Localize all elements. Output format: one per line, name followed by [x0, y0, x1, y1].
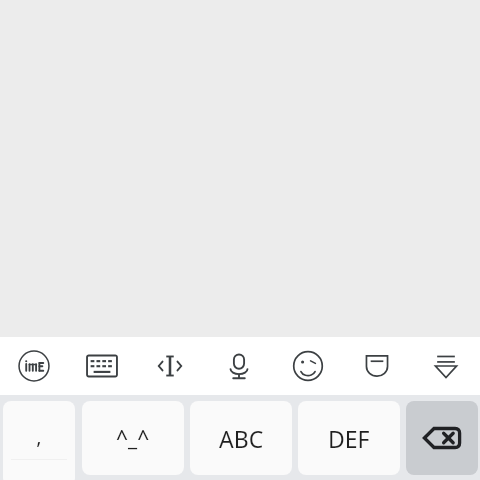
button[interactable]: ABC — [190, 401, 292, 475]
button[interactable]: Emoji — [273, 337, 342, 395]
staticText: , — [36, 423, 42, 450]
button[interactable]: Move cursor — [136, 337, 204, 395]
staticText: DEF — [328, 423, 370, 454]
button[interactable]: DEF — [298, 401, 400, 475]
button[interactable]: ^_^ — [82, 401, 184, 475]
button[interactable]: Backspace — [406, 401, 478, 475]
staticText: ^_^ — [116, 424, 150, 453]
button[interactable]: , — [3, 401, 75, 480]
button[interactable]: Keyboard settings — [68, 337, 136, 395]
button[interactable]: Clipboard — [342, 337, 411, 395]
button[interactable]: Input method — [0, 337, 68, 395]
button[interactable]: Voice input — [204, 337, 273, 395]
staticText: ABC — [219, 423, 264, 454]
button[interactable]: Hide keyboard — [411, 337, 480, 395]
